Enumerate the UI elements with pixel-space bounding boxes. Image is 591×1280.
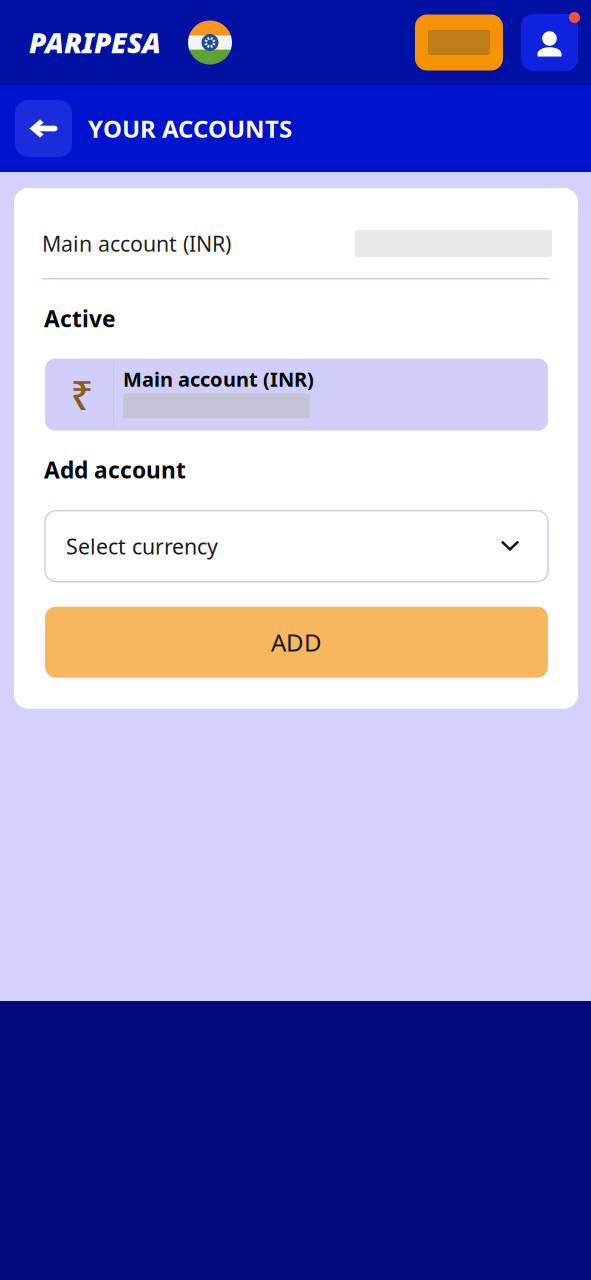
staticText: Select currency <box>66 532 218 560</box>
staticText: Main account (INR) <box>42 229 231 258</box>
staticText: ₹ <box>70 368 93 421</box>
button[interactable]: Select currency <box>45 511 548 582</box>
staticText: ADD <box>271 626 322 658</box>
button[interactable]: Balance <box>415 14 503 70</box>
button[interactable]: Profile <box>521 14 578 71</box>
button[interactable]: Back <box>15 100 72 157</box>
staticText: Add account <box>44 455 186 485</box>
staticText: Active <box>44 303 116 334</box>
staticText: PARIPESA <box>29 24 161 61</box>
button[interactable]: ADD <box>45 607 548 678</box>
staticText: Main account (INR) <box>123 366 314 392</box>
staticText: YOUR ACCOUNTS <box>88 113 292 144</box>
